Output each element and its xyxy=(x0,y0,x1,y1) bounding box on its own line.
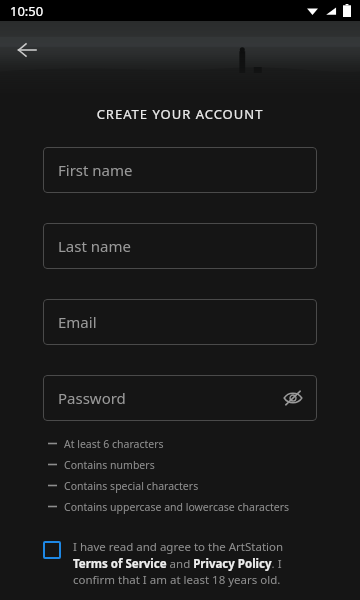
staticText: Contains special characters xyxy=(64,479,199,493)
staticText: Last name xyxy=(58,236,131,256)
staticText: At least 6 characters xyxy=(64,437,164,451)
staticText: Email xyxy=(58,312,97,332)
button[interactable]: First name xyxy=(43,147,317,193)
staticText: First name xyxy=(58,160,133,180)
button[interactable]: Last name xyxy=(43,223,317,269)
button[interactable]: Show password xyxy=(279,384,307,412)
staticText: Contains uppercase and lowercase charact… xyxy=(64,500,290,514)
staticText: I have read and agree to the ArtStation … xyxy=(73,539,320,587)
staticText: CREATE YOUR ACCOUNT xyxy=(0,105,360,123)
staticText: 10:50 xyxy=(10,2,44,20)
button[interactable]: Password xyxy=(43,375,317,421)
button[interactable]: Email xyxy=(43,299,317,345)
staticText: Contains numbers xyxy=(64,458,155,472)
staticText: Password xyxy=(58,388,126,408)
button[interactable]: Back xyxy=(9,32,45,68)
button[interactable]: I have read and agree to the ArtStation … xyxy=(43,539,320,587)
